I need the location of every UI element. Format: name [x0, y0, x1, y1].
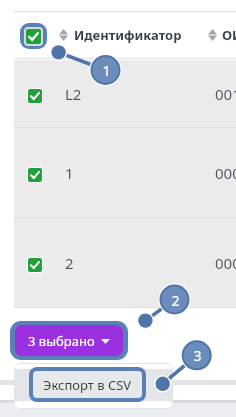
staticText: ОИД	[222, 26, 236, 44]
staticText: 3 выбрано	[28, 332, 95, 350]
button[interactable]: Select row 1	[14, 128, 236, 218]
staticText: 0004	[215, 163, 236, 183]
staticText: 1	[102, 61, 111, 80]
staticText: 0012	[215, 84, 236, 104]
staticText: L2	[65, 84, 82, 104]
button[interactable]	[14, 369, 173, 401]
button[interactable]: Select all rows	[20, 23, 47, 49]
staticText: 2	[171, 291, 180, 310]
staticText: 3	[193, 346, 202, 365]
button[interactable]: Select row L2	[27, 88, 43, 104]
button[interactable]: Select row 1	[27, 167, 43, 183]
staticText: Экспорт в CSV	[43, 376, 132, 394]
staticText: 0008	[215, 253, 236, 273]
button[interactable]: Select row 2	[14, 218, 236, 308]
staticText: 1	[65, 163, 74, 183]
staticText: Идентификатор	[74, 26, 182, 44]
button[interactable]: Select row L2	[14, 60, 236, 128]
staticText: 2	[65, 253, 74, 273]
button[interactable]: 3 выбрано	[15, 325, 123, 356]
button[interactable]: Select row 2	[27, 257, 43, 273]
button[interactable]: Экспорт в CSV	[33, 371, 142, 398]
